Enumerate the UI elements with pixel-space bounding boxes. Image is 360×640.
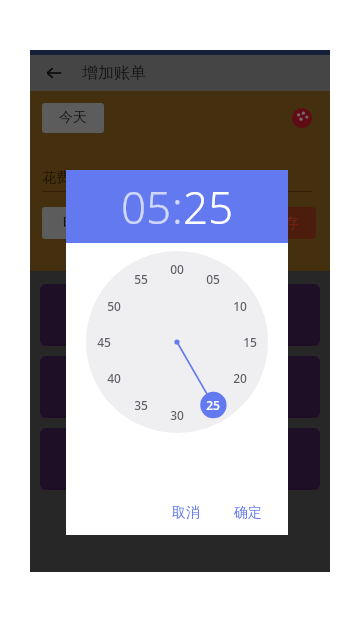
staticText: 45: [97, 334, 111, 350]
button[interactable]: [40, 284, 175, 346]
button[interactable]: 50: [101, 297, 127, 315]
button[interactable]: 05: [200, 270, 226, 288]
button[interactable]: 35: [128, 396, 154, 414]
staticText: 保存: [269, 214, 299, 233]
button[interactable]: 25: [200, 396, 226, 414]
button[interactable]: [185, 356, 320, 418]
staticText: 花费: [42, 169, 70, 187]
staticText: 25: [206, 397, 220, 413]
button[interactable]: Palette: [288, 104, 316, 132]
staticText: 55: [134, 271, 148, 287]
button[interactable]: 00: [164, 260, 190, 278]
button[interactable]: 时间: [42, 207, 112, 239]
staticText: 15: [243, 334, 257, 350]
button[interactable]: 30: [164, 406, 190, 424]
staticText: 确定: [234, 504, 262, 522]
button[interactable]: 55: [128, 270, 154, 288]
button[interactable]: 确定: [224, 498, 272, 528]
staticText: 35: [134, 397, 148, 413]
staticText: 20: [233, 370, 247, 386]
staticText: :: [172, 177, 183, 237]
staticText: 25: [183, 177, 234, 237]
button[interactable]: 10: [227, 297, 253, 315]
button[interactable]: [185, 428, 320, 490]
button[interactable]: [185, 284, 320, 346]
button[interactable]: 45: [91, 333, 117, 351]
staticText: 10: [233, 298, 247, 314]
staticText: 增加账单: [82, 63, 146, 83]
button[interactable]: 今天: [42, 103, 104, 133]
staticText: 05: [121, 177, 172, 237]
staticText: 00: [170, 261, 184, 277]
button[interactable]: [40, 428, 175, 490]
button[interactable]: 40: [101, 369, 127, 387]
staticText: 今天: [59, 109, 87, 127]
button[interactable]: Back: [40, 59, 68, 87]
staticText: 取消: [172, 504, 200, 522]
staticText: 时间: [63, 214, 91, 232]
button[interactable]: 20: [227, 369, 253, 387]
button[interactable]: 取消: [162, 498, 210, 528]
staticText: 40: [107, 370, 121, 386]
button[interactable]: 05: [121, 177, 172, 237]
button[interactable]: 25: [183, 177, 234, 237]
staticText: 30: [170, 407, 184, 423]
staticText: 05: [206, 271, 220, 287]
staticText: 50: [107, 298, 121, 314]
button[interactable]: 15: [237, 333, 263, 351]
button[interactable]: 保存: [252, 207, 316, 239]
button[interactable]: [40, 356, 175, 418]
